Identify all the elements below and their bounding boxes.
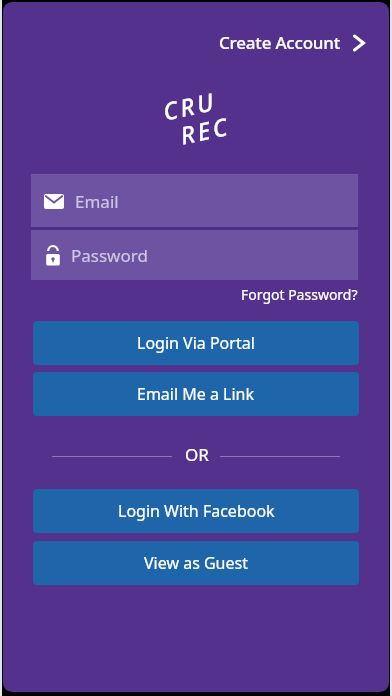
button[interactable]: Email Me a Link [33, 372, 359, 416]
staticText: REC [177, 109, 233, 152]
staticText: Login Via Portal [137, 332, 255, 354]
button[interactable]: Forgot Password? [241, 285, 358, 304]
staticText: Password [71, 244, 148, 267]
button[interactable]: Create Account [219, 31, 365, 54]
staticText: Create Account [219, 31, 341, 54]
staticText: Forgot Password? [241, 285, 358, 304]
button[interactable]: Login Via Portal [33, 321, 359, 365]
staticText: CRU [160, 84, 219, 128]
button[interactable]: Password [31, 230, 358, 280]
button[interactable]: View as Guest [33, 541, 359, 585]
button[interactable]: Login With Facebook [33, 489, 359, 533]
staticText: View as Guest [144, 552, 248, 574]
button[interactable]: Email [31, 175, 358, 227]
staticText: Email [75, 190, 119, 213]
staticText: Email Me a Link [137, 383, 255, 405]
staticText: OR [185, 443, 209, 466]
staticText: Login With Facebook [118, 500, 275, 522]
